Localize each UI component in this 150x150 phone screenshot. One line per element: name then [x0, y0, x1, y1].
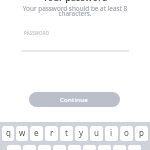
staticText: r: [50, 127, 54, 138]
staticText: i: [110, 127, 113, 138]
button[interactable]: l: [128, 145, 141, 150]
button[interactable]: t: [60, 126, 73, 141]
staticText: e: [34, 127, 39, 138]
button[interactable]: g: [68, 145, 81, 150]
staticText: u: [94, 127, 99, 138]
staticText: o: [124, 127, 129, 138]
button[interactable]: e: [30, 126, 43, 141]
button[interactable]: s: [23, 145, 36, 150]
button[interactable]: Continue: [29, 92, 120, 107]
staticText: Your password should be at least 8 chara…: [0, 4, 150, 18]
button[interactable]: i: [105, 126, 118, 141]
staticText: p: [139, 127, 144, 138]
button[interactable]: o: [120, 126, 133, 141]
button[interactable]: p: [135, 126, 148, 141]
button[interactable]: u: [90, 126, 103, 141]
button[interactable]: j: [98, 145, 111, 150]
button[interactable]: k: [113, 145, 126, 150]
button[interactable]: q: [2, 126, 14, 141]
button[interactable]: w: [16, 126, 28, 141]
button[interactable]: a: [7, 145, 21, 150]
button[interactable]: f: [53, 145, 66, 150]
staticText: Continue: [60, 96, 89, 104]
button[interactable]: y: [75, 126, 88, 141]
staticText: t: [65, 127, 68, 138]
staticText: y: [79, 127, 84, 138]
staticText: w: [19, 127, 26, 138]
staticText: PASSWORD: [24, 30, 50, 36]
staticText: Your password: [0, 0, 150, 3]
button[interactable]: r: [45, 126, 58, 141]
button[interactable]: h: [83, 145, 96, 150]
button[interactable]: d: [38, 145, 51, 150]
button[interactable]: Password field: [21, 28, 129, 52]
staticText: q: [6, 127, 11, 138]
